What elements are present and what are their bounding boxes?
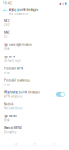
staticText: MNC — [4, 31, 10, 34]
staticText: ◢ ⊿ ▮ — [59, 2, 66, 5]
button[interactable]: Protokół APN — [0, 65, 69, 76]
staticText: Edytuj punkt dostępu — [9, 8, 39, 11]
staticText: 10:42 — [3, 1, 12, 5]
staticText: ○ — [33, 142, 36, 146]
staticText: Nieokreślony — [4, 107, 22, 110]
staticText: ← — [3, 7, 7, 13]
button[interactable]: Włącz/wyłącz punkt dostępu — [0, 88, 69, 100]
staticText: Typ APN — [4, 55, 15, 58]
staticText: Wartość MVNO — [4, 126, 22, 130]
button[interactable]: Protokół roamingu — [0, 76, 69, 88]
button[interactable]: Back — [11, 139, 19, 148]
staticText: Typ MVNO — [4, 114, 17, 118]
staticText: 01 — [4, 35, 8, 39]
staticText: IPv4 — [4, 83, 10, 86]
button[interactable]: Home — [30, 139, 38, 148]
staticText: default,supl — [4, 59, 21, 62]
staticText: 260 — [4, 23, 10, 27]
button[interactable]: Wartość MVNO — [0, 124, 69, 136]
button[interactable]: Typ MVNO — [0, 112, 69, 124]
staticText: IPv4 — [4, 71, 10, 74]
staticText: Brak — [4, 47, 9, 50]
staticText: Domyślny — [4, 130, 16, 134]
staticText: Włącz/wyłącz punkt dostępu — [4, 90, 40, 94]
staticText: MCC — [4, 19, 10, 23]
staticText: □ — [52, 142, 55, 145]
button[interactable]: Typ uwierzytelniania — [0, 41, 69, 53]
button[interactable]: Typ APN — [0, 53, 69, 65]
staticText: Protokół roamingu — [4, 79, 30, 82]
staticText: APN włączony — [4, 95, 22, 98]
staticText: Brak — [4, 118, 9, 122]
staticText: Typ uwierzytelniania — [4, 43, 31, 46]
staticText: Protokół APN — [4, 67, 23, 70]
button[interactable]: MCC — [0, 17, 69, 29]
staticText: Nie ustawiono — [9, 12, 29, 15]
button[interactable]: MNC — [0, 29, 69, 41]
button[interactable]: Back — [2, 8, 7, 12]
button[interactable]: Nośnik — [0, 100, 69, 112]
staticText: ◁ — [14, 142, 17, 146]
staticText: Nośnik — [4, 102, 13, 106]
